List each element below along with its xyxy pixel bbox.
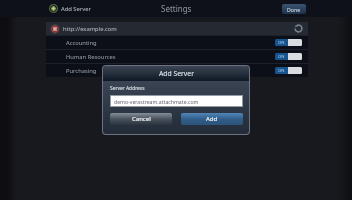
staticText: Cancel [132,115,151,123]
staticText: Human Resources [66,53,116,61]
staticText: Done [287,6,301,13]
button[interactable]: Add Server [49,4,91,13]
button[interactable]: ON [275,39,302,46]
button[interactable]: demo-verastream.attachmate.com [111,96,242,106]
other: Remove server [50,24,60,34]
button[interactable]: Add [181,113,243,125]
button[interactable]: Human Resources [46,50,308,63]
button[interactable]: ON [275,53,302,60]
button[interactable]: ON [275,67,302,74]
staticText: Add Server [61,5,91,13]
staticText: ON [278,40,285,46]
staticText: http://example.com [63,25,117,33]
button[interactable]: Done [282,4,306,14]
button[interactable]: Remove server [46,22,308,35]
button[interactable]: Purchasing [46,64,308,77]
staticText: demo-verastream.attachmate.com [114,98,199,105]
button[interactable]: Cancel [110,113,172,125]
staticText: Add [206,115,218,123]
button[interactable]: Refresh [293,23,304,34]
staticText: Accounting [66,39,97,47]
staticText: ON [278,68,285,74]
staticText: Settings [161,3,192,14]
button[interactable]: Accounting [46,36,308,49]
staticText: Purchasing [66,67,97,75]
staticText: Server Address [110,85,145,92]
staticText: ON [278,54,285,60]
staticText: Add Server [159,69,194,78]
